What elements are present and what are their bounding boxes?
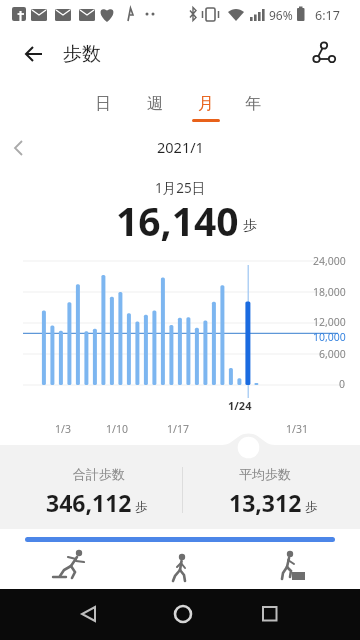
staticText: 24,000: [313, 254, 346, 268]
staticText: 歩数: [63, 42, 101, 66]
button[interactable]: [300, 36, 344, 80]
button[interactable]: 月: [184, 86, 228, 122]
staticText: 12,000: [313, 315, 346, 329]
staticText: 歩: [305, 499, 318, 515]
button[interactable]: [66, 592, 110, 636]
staticText: 歩: [243, 217, 257, 235]
staticText: 0: [339, 377, 346, 391]
staticText: 1/17: [167, 422, 189, 436]
staticText: 日: [95, 94, 111, 114]
button[interactable]: [157, 544, 205, 583]
staticText: 1/31: [286, 422, 308, 436]
staticText: 6:17: [315, 7, 340, 24]
button[interactable]: [14, 36, 52, 74]
button[interactable]: 週: [133, 86, 177, 122]
button[interactable]: [6, 135, 32, 161]
staticText: 18,000: [313, 285, 346, 299]
staticText: 平均歩数: [239, 466, 291, 482]
staticText: 16,140: [116, 194, 239, 242]
staticText: 1/24: [228, 398, 252, 413]
button[interactable]: [248, 592, 292, 636]
staticText: 96%: [269, 7, 293, 23]
staticText: 月: [198, 94, 214, 114]
staticText: 13,312: [229, 487, 302, 518]
staticText: 346,112: [46, 487, 132, 518]
staticText: 2021/1: [157, 137, 204, 157]
staticText: 6,000: [319, 347, 346, 361]
staticText: 10,000: [313, 330, 346, 344]
staticText: 合計歩数: [73, 466, 125, 482]
staticText: 週: [147, 94, 163, 114]
staticText: 1/3: [55, 422, 71, 436]
button[interactable]: [265, 544, 313, 583]
staticText: 歩: [135, 499, 148, 515]
button[interactable]: 2021/1: [120, 127, 240, 167]
button[interactable]: [234, 433, 263, 462]
button[interactable]: 年: [231, 86, 275, 122]
staticText: 1月25日: [155, 179, 206, 197]
button[interactable]: [46, 544, 94, 583]
button[interactable]: 日: [81, 86, 125, 122]
button[interactable]: [161, 592, 205, 636]
staticText: 年: [245, 94, 261, 114]
staticText: 1/10: [106, 422, 128, 436]
